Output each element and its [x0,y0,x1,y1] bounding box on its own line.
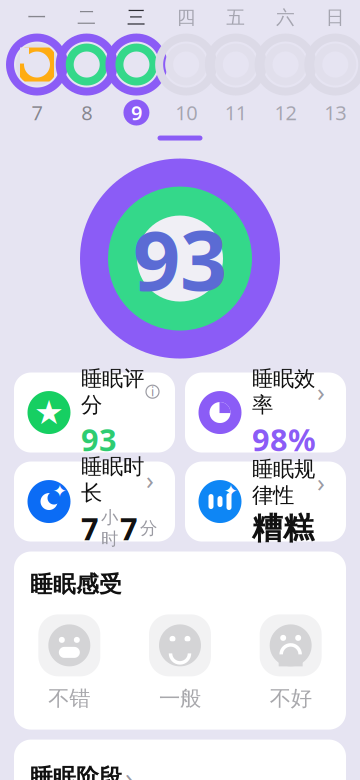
staticText: 98% [252,419,316,460]
staticText: 10 [175,99,197,126]
button[interactable]: 睡眠阶段 [14,740,346,780]
staticText: 睡眠阶段 [30,763,122,780]
staticText: 8 [81,99,92,126]
staticText: 二 [77,6,96,29]
staticText: 六 [276,6,295,29]
staticText: ★ [34,394,64,431]
staticText: 糟糕 [252,509,314,547]
staticText: › [317,375,325,408]
staticText: 不好 [270,685,312,712]
staticText: 睡眠时长 [81,453,144,506]
staticText: 一 [27,6,46,29]
staticText: 11 [225,99,247,126]
button[interactable]: ★ [14,372,175,452]
staticText: › [317,465,325,499]
staticText: ✦ [52,481,67,501]
button[interactable]: 六 [255,7,304,125]
staticText: 9 [131,99,142,126]
staticText: 睡眠效率 [252,365,315,418]
staticText: 7 [120,508,138,549]
staticText: 日 [326,6,345,29]
staticText: 睡眠感受 [30,570,122,598]
staticText: 13 [324,99,346,126]
button[interactable]: 三 [105,7,155,125]
button[interactable]: 一 [6,7,56,125]
button[interactable]: 二 [56,7,105,125]
button[interactable]: 睡眠效率 [185,372,346,452]
staticText: 不错 [48,685,90,712]
staticText: 小时 [101,507,118,550]
staticText: › [146,463,154,496]
staticText: 93 [81,419,117,460]
staticText: 一般 [159,685,201,712]
staticText: 12 [275,99,297,126]
staticText: 93 [133,204,227,313]
button[interactable]: 不错 [14,614,125,712]
button[interactable]: 一般 [125,614,235,712]
button[interactable]: ✦ [14,461,175,541]
staticText: 分 [140,518,157,539]
button[interactable]: 五 [205,7,255,125]
staticText: 四 [177,6,196,29]
staticText: ✦ [223,481,238,501]
button[interactable]: 四 [155,7,205,125]
button[interactable]: 日 [304,7,354,125]
staticText: 睡眠评分 [81,365,144,418]
button[interactable]: 不好 [235,614,346,712]
staticText: i [151,384,154,400]
staticText: › [125,760,133,780]
staticText: 三 [127,6,146,29]
button[interactable]: ✦ [185,461,346,541]
staticText: 睡眠规律性 [252,456,315,508]
staticText: 7 [81,508,99,549]
staticText: 五 [226,6,245,29]
staticText: 7 [31,99,42,126]
